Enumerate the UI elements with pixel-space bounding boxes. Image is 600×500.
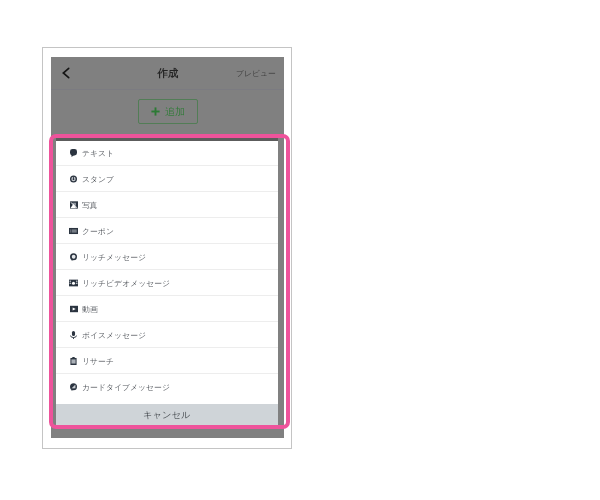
staticText: 追加	[165, 105, 185, 118]
button[interactable]: Back	[57, 64, 75, 82]
staticText: 動画	[82, 304, 98, 314]
button[interactable]: テキスト	[56, 141, 278, 165]
staticText: キャンセル	[143, 409, 191, 421]
staticText: テキスト	[82, 148, 115, 158]
staticText: プレビュー	[236, 68, 276, 78]
button[interactable]: ボイスメッセージ	[56, 322, 278, 347]
button[interactable]: リッチビデオメッセージ	[56, 270, 278, 295]
staticText: カードタイプメッセージ	[82, 382, 170, 392]
button[interactable]: スタンプ	[56, 166, 278, 191]
staticText: 作成	[157, 67, 178, 80]
button[interactable]: プレビュー	[236, 68, 276, 78]
button[interactable]: カードタイプメッセージ	[56, 374, 278, 399]
button[interactable]: 写真	[56, 192, 278, 217]
staticText: クーポン	[82, 226, 114, 236]
staticText: ボイスメッセージ	[82, 330, 147, 340]
button[interactable]: 動画	[56, 296, 278, 321]
staticText: 写真	[82, 200, 98, 210]
button[interactable]: 追加	[138, 99, 198, 124]
button[interactable]: リッチメッセージ	[56, 244, 278, 269]
button[interactable]: クーポン	[56, 218, 278, 243]
staticText: リッチメッセージ	[82, 252, 147, 262]
staticText: スタンプ	[82, 174, 115, 184]
button[interactable]: リサーチ	[56, 348, 278, 373]
staticText: リサーチ	[82, 356, 114, 366]
staticText: リッチビデオメッセージ	[82, 278, 171, 288]
button[interactable]: キャンセル	[56, 404, 278, 425]
